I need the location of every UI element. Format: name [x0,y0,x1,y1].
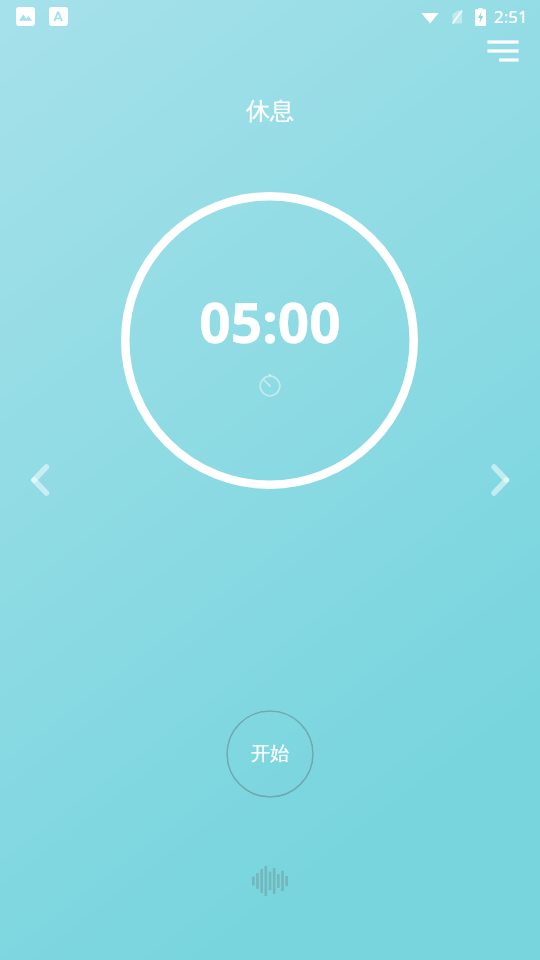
staticText: 休息 [246,96,294,126]
staticText: 2:51 [494,5,528,28]
button[interactable]: Previous [8,448,72,512]
button[interactable]: Timer 05:00 [121,192,418,489]
staticText: 05:00 [199,284,341,359]
staticText: 开始 [251,742,289,766]
button[interactable]: Sound [240,856,300,906]
button[interactable]: Next [468,448,532,512]
button[interactable]: Menu [478,26,528,76]
button[interactable]: 开始 [226,710,314,798]
